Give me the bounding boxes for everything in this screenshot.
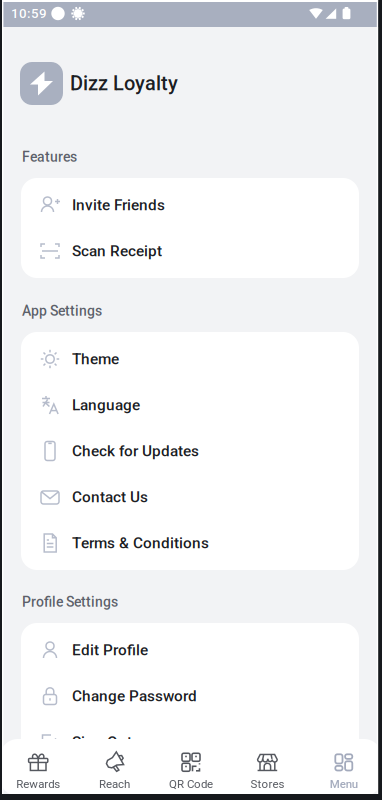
button[interactable]: Terms & Conditions bbox=[21, 520, 359, 566]
button[interactable]: Change Password bbox=[21, 673, 359, 719]
button[interactable]: Sign Out bbox=[21, 719, 359, 765]
button[interactable]: QR Code bbox=[153, 738, 229, 797]
staticText: Sign Out bbox=[72, 733, 132, 751]
staticText: Features bbox=[22, 149, 77, 165]
staticText: Stores bbox=[250, 777, 284, 791]
staticText: Reach bbox=[99, 777, 130, 791]
button[interactable]: Theme bbox=[21, 336, 359, 382]
button[interactable]: Reach bbox=[76, 738, 153, 797]
staticText: Invite Friends bbox=[72, 196, 165, 214]
staticText: Edit Profile bbox=[72, 641, 148, 659]
button[interactable]: Rewards bbox=[0, 738, 76, 797]
staticText: 10:59 bbox=[11, 6, 47, 21]
button[interactable]: Contact Us bbox=[21, 474, 359, 520]
staticText: Change Password bbox=[72, 687, 197, 705]
button[interactable]: Scan Receipt bbox=[21, 228, 359, 274]
staticText: Theme bbox=[72, 350, 119, 368]
staticText: App Settings bbox=[22, 303, 102, 319]
staticText: Profile Settings bbox=[22, 594, 118, 610]
button[interactable]: Invite Friends bbox=[21, 182, 359, 228]
button[interactable]: Stores bbox=[229, 738, 306, 797]
staticText: Language bbox=[72, 396, 140, 414]
staticText: Terms & Conditions bbox=[72, 534, 209, 552]
button[interactable]: Edit Profile bbox=[21, 627, 359, 673]
staticText: Rewards bbox=[16, 777, 60, 791]
staticText: Contact Us bbox=[72, 488, 148, 506]
staticText: Menu bbox=[330, 777, 358, 791]
staticText: QR Code bbox=[169, 777, 213, 791]
staticText: Dizz Loyalty bbox=[70, 72, 178, 95]
button[interactable]: Check for Updates bbox=[21, 428, 359, 474]
button[interactable]: Language bbox=[21, 382, 359, 428]
button[interactable]: Menu bbox=[306, 738, 382, 797]
staticText: Scan Receipt bbox=[72, 242, 162, 260]
staticText: Check for Updates bbox=[72, 442, 199, 460]
